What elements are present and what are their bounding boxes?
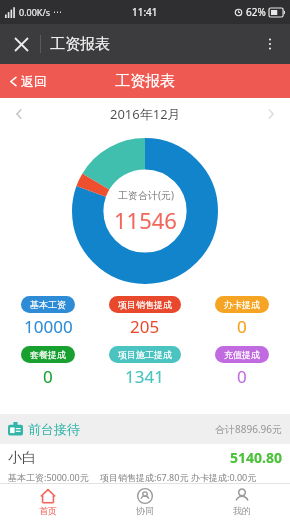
staticText: 11546 bbox=[114, 205, 177, 235]
staticText: 0.00K/s bbox=[19, 6, 51, 18]
staticText: 基本工资:5000.00元 bbox=[8, 471, 100, 483]
button[interactable]: 项目销售提成 bbox=[96, 296, 193, 338]
button[interactable]: Close bbox=[8, 31, 34, 57]
staticText: 办卡提成:0.00元 bbox=[191, 471, 282, 483]
staticText: 62% bbox=[246, 5, 266, 19]
staticText: 11:41 bbox=[132, 5, 158, 19]
button[interactable]: 办卡提成 bbox=[193, 296, 290, 338]
button[interactable]: 项目施工提成 bbox=[96, 346, 193, 388]
staticText: 1341 bbox=[125, 365, 164, 388]
staticText: 0 bbox=[237, 365, 247, 388]
staticText: 项目销售提成:67.80元 bbox=[100, 471, 191, 483]
staticText: 工资报表 bbox=[115, 72, 175, 91]
staticText: 工资合计(元) bbox=[118, 188, 174, 202]
button[interactable]: 套餐提成 bbox=[0, 346, 96, 388]
button[interactable]: 返回 bbox=[8, 73, 47, 89]
button[interactable]: 基本工资 bbox=[0, 296, 96, 338]
button[interactable]: Previous month bbox=[6, 101, 32, 127]
staticText: 办卡提成 bbox=[224, 299, 260, 310]
button[interactable]: 前台接待 bbox=[0, 414, 290, 444]
staticText: 工资报表 bbox=[50, 35, 110, 54]
staticText: 充值提成 bbox=[224, 349, 260, 360]
button[interactable]: 充值提成 bbox=[193, 346, 290, 388]
staticText: 首页 bbox=[39, 505, 57, 516]
button[interactable]: 我的 bbox=[193, 484, 290, 520]
staticText: 205 bbox=[130, 315, 160, 338]
staticText: 协同 bbox=[136, 505, 154, 516]
staticText: 小白 bbox=[8, 449, 36, 467]
staticText: 2016年12月 bbox=[110, 105, 181, 123]
staticText: 返回 bbox=[21, 73, 47, 89]
button[interactable]: 协同 bbox=[96, 484, 193, 520]
staticText: 项目施工提成 bbox=[118, 349, 172, 360]
staticText: 10000 bbox=[24, 315, 73, 338]
staticText: 0 bbox=[237, 315, 247, 338]
button[interactable]: More options bbox=[256, 30, 284, 58]
staticText: 套餐提成 bbox=[30, 349, 66, 360]
staticText: 我的 bbox=[233, 505, 251, 516]
staticText: ⋯ bbox=[53, 7, 62, 17]
staticText: 前台接待 bbox=[28, 421, 80, 437]
button[interactable]: 首页 bbox=[0, 484, 96, 520]
staticText: 项目销售提成 bbox=[118, 299, 172, 310]
staticText: 0 bbox=[43, 365, 53, 388]
staticText: 合计8896.96元 bbox=[215, 422, 282, 436]
staticText: 基本工资 bbox=[30, 299, 66, 310]
button[interactable]: 小白 bbox=[0, 444, 290, 483]
button[interactable]: Next month bbox=[258, 101, 284, 127]
staticText: 5140.80 bbox=[230, 448, 282, 467]
